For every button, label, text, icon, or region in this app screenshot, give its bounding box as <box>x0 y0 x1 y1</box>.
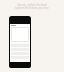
button[interactable] <box>11 27 29 42</box>
staticText: Survey, collect the best system and idea… <box>3 3 61 10</box>
